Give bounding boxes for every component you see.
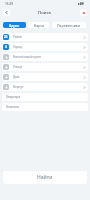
staticText: Корпус <box>13 85 24 89</box>
button[interactable]: Квартира <box>2 93 88 101</box>
button[interactable]: Найти <box>3 171 87 184</box>
button[interactable]: 4 <box>2 43 88 51</box>
staticText: Квартира <box>6 95 21 99</box>
staticText: 4 <box>5 45 7 49</box>
staticText: Карта <box>34 23 44 28</box>
button[interactable]: Улица <box>2 63 88 71</box>
button[interactable]: Адрес <box>3 22 26 28</box>
staticText: Адрес <box>9 23 20 28</box>
staticText: Поиск <box>38 10 52 16</box>
staticText: Комната <box>6 105 19 109</box>
button[interactable]: 25 <box>2 33 88 41</box>
button[interactable]: Корпус <box>2 83 88 91</box>
button[interactable]: Комната <box>2 103 88 111</box>
button[interactable]: Карта <box>28 22 49 28</box>
button[interactable]: Перевозчики <box>52 22 86 28</box>
staticText: Перевозчики <box>57 23 81 28</box>
button[interactable]: Дом <box>2 73 88 81</box>
button[interactable]: Favorites <box>80 9 87 16</box>
button[interactable]: Населённый пункт <box>2 53 88 61</box>
staticText: 25 <box>4 35 8 39</box>
staticText: Город <box>13 45 22 49</box>
staticText: Дом <box>13 75 20 79</box>
staticText: Найти <box>37 174 53 181</box>
staticText: Населённый пункт <box>13 55 42 59</box>
staticText: Район <box>13 35 23 39</box>
staticText: 16:29 <box>5 2 14 6</box>
staticText: Улица <box>13 65 23 69</box>
button[interactable]: Back <box>3 9 10 16</box>
